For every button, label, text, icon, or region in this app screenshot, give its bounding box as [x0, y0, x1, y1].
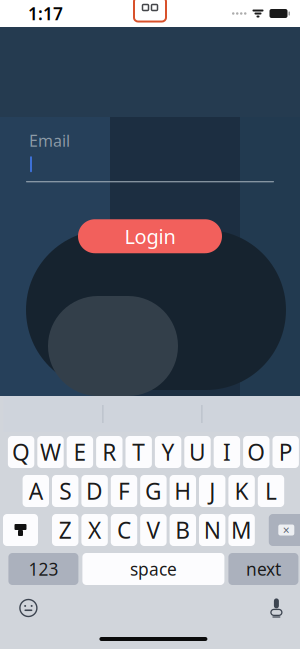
staticText: 1:17: [28, 2, 63, 25]
button[interactable]: U: [184, 436, 211, 468]
button[interactable]: O: [243, 436, 269, 468]
staticText: J: [209, 476, 215, 506]
staticText: I: [223, 437, 231, 467]
staticText: D: [86, 476, 103, 506]
button[interactable]: R: [96, 436, 122, 468]
button[interactable]: T: [125, 436, 152, 468]
button[interactable]: L: [258, 475, 284, 507]
staticText: S: [59, 476, 71, 506]
button[interactable]: D: [81, 475, 108, 507]
staticText: H: [174, 476, 191, 506]
button[interactable]: next: [228, 553, 298, 585]
button[interactable]: V: [140, 514, 167, 546]
staticText: E: [73, 437, 86, 467]
button[interactable]: Q: [8, 436, 34, 468]
button[interactable]: N: [199, 514, 225, 546]
button[interactable]: Login: [78, 219, 222, 253]
button[interactable]: A: [23, 475, 49, 507]
button[interactable]: J: [199, 475, 225, 507]
staticText: O: [247, 437, 265, 467]
staticText: space: [130, 557, 177, 580]
staticText: B: [175, 515, 190, 545]
staticText: F: [118, 476, 130, 506]
button[interactable]: Z: [52, 514, 78, 546]
button[interactable]: Y: [155, 436, 181, 468]
button[interactable]: M: [228, 514, 255, 546]
staticText: C: [117, 515, 131, 545]
staticText: W: [40, 437, 61, 467]
staticText: ×: [283, 522, 290, 538]
staticText: L: [265, 476, 277, 506]
button[interactable]: F: [111, 475, 137, 507]
button[interactable]: C: [111, 514, 137, 546]
button[interactable]: I: [214, 436, 240, 468]
button[interactable]: Dictation: [259, 593, 293, 623]
staticText: Z: [59, 515, 72, 545]
staticText: Y: [162, 437, 175, 467]
button[interactable]: G: [140, 475, 167, 507]
staticText: V: [146, 515, 160, 545]
staticText: U: [189, 437, 206, 467]
staticText: T: [132, 437, 145, 467]
button[interactable]: E: [67, 436, 93, 468]
button[interactable]: H: [170, 475, 196, 507]
staticText: 123: [28, 557, 58, 580]
staticText: K: [235, 476, 249, 506]
staticText: N: [204, 515, 221, 545]
staticText: Login: [124, 223, 175, 250]
staticText: Email: [29, 130, 70, 151]
button[interactable]: P: [272, 436, 299, 468]
button[interactable]: K: [228, 475, 255, 507]
staticText: A: [29, 476, 43, 506]
button[interactable]: S: [52, 475, 78, 507]
staticText: M: [231, 515, 252, 545]
staticText: next: [246, 557, 281, 580]
button[interactable]: Delete: [269, 514, 300, 546]
button[interactable]: space: [82, 553, 224, 585]
staticText: R: [102, 437, 116, 467]
button[interactable]: W: [37, 436, 64, 468]
staticText: X: [88, 515, 101, 545]
staticText: P: [279, 437, 293, 467]
button[interactable]: B: [170, 514, 196, 546]
staticText: G: [145, 476, 162, 506]
button[interactable]: 123: [8, 553, 78, 585]
button[interactable]: Shift: [3, 514, 38, 546]
button[interactable]: Emoji keyboard: [11, 593, 45, 623]
staticText: Q: [12, 437, 30, 467]
button[interactable]: X: [81, 514, 108, 546]
